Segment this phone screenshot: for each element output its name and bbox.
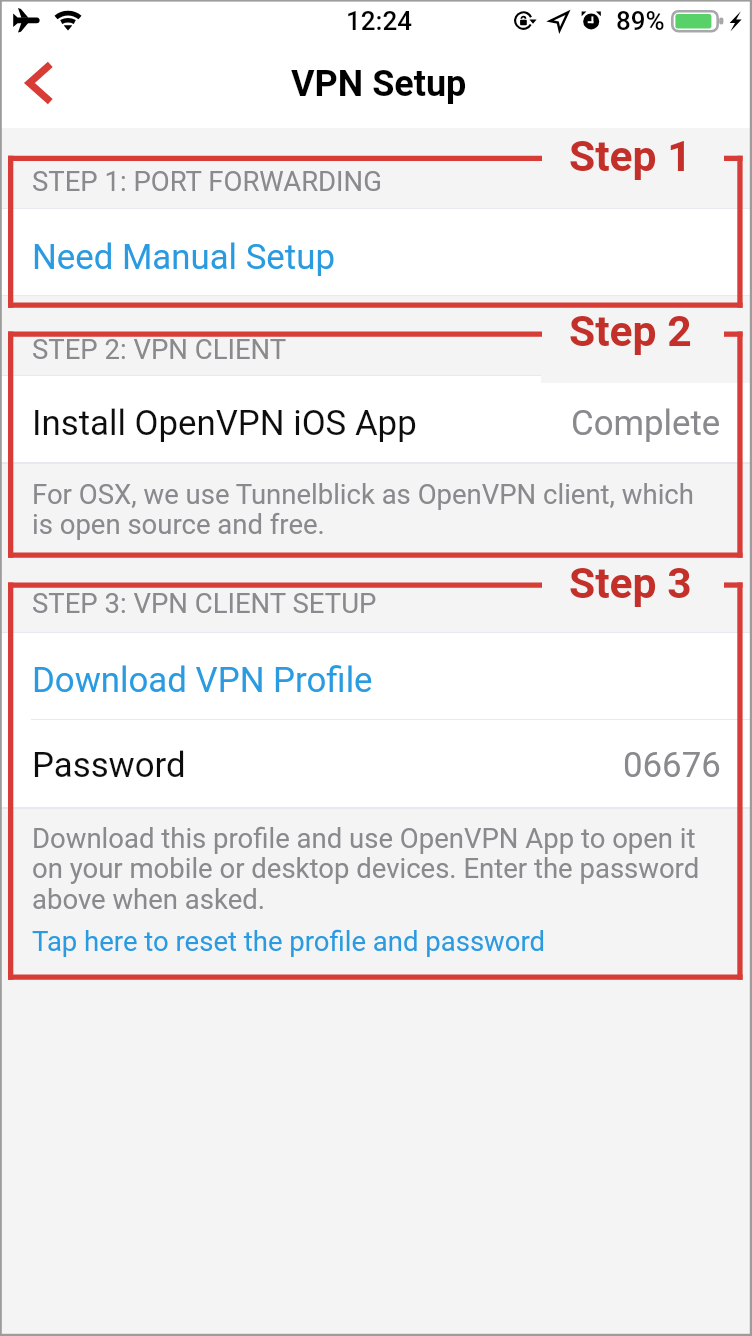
- staticText: Step 3: [569, 558, 692, 608]
- staticText: Download this profile and use OpenVPN Ap…: [32, 822, 700, 916]
- staticText: STEP 1: PORT FORWARDING: [32, 165, 382, 197]
- staticText: STEP 3: VPN CLIENT SETUP: [32, 587, 377, 619]
- button[interactable]: Back: [2, 50, 76, 128]
- staticText: 12:24: [346, 6, 413, 36]
- button[interactable]: Need Manual Setup: [0, 0, 303, 41]
- staticText: Step 2: [569, 306, 692, 356]
- staticText: For OSX, we use Tunnelblick as OpenVPN c…: [32, 478, 694, 541]
- button[interactable]: Download VPN Profile: [0, 0, 341, 41]
- button[interactable]: [0, 376, 752, 462]
- staticText: VPN Setup: [291, 63, 467, 105]
- button[interactable]: [0, 209, 752, 296]
- staticText: Install OpenVPN iOS App: [32, 403, 417, 444]
- staticText: STEP 2: VPN CLIENT: [32, 333, 287, 365]
- staticText: Complete: [571, 403, 721, 444]
- staticText: 89%: [616, 6, 665, 36]
- button[interactable]: Tap here to reset the profile and passwo…: [0, 0, 514, 32]
- staticText: Step 1: [569, 131, 692, 181]
- staticText: Password: [32, 745, 186, 786]
- button[interactable]: [0, 633, 752, 720]
- staticText: 06676: [623, 745, 721, 786]
- button[interactable]: [0, 720, 752, 808]
